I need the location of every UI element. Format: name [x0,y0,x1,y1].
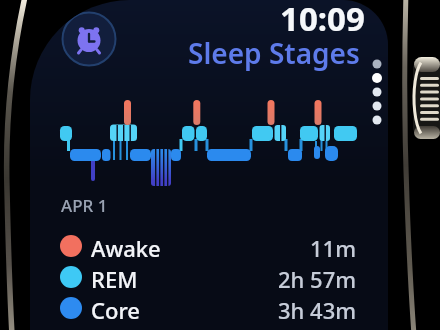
staticText: 11m [310,233,357,258]
button[interactable]: Core [60,295,357,320]
staticText: 3h 43m [278,295,357,320]
staticText: REM [91,264,138,289]
button[interactable]: Sleep Stages [188,34,360,72]
staticText: Awake [91,233,161,258]
staticText: 10:09 [280,0,365,41]
button[interactable]: Awake [60,233,357,258]
staticText: Core [91,295,140,320]
button[interactable]: REM [60,264,357,289]
button[interactable] [61,11,117,67]
staticText: APR 1 [61,194,108,217]
staticText: 2h 57m [278,264,357,289]
